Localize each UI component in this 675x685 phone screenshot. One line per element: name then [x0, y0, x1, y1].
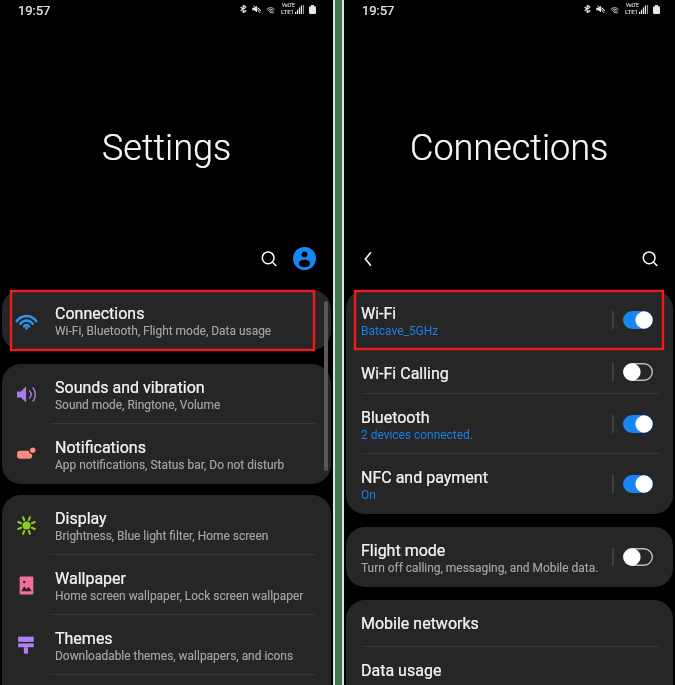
- staticText: Wallpaper: [55, 569, 126, 588]
- staticText: VoLTE: [282, 3, 295, 8]
- button[interactable]: Flight mode: [346, 527, 673, 587]
- staticText: Downloadable themes, wallpapers, and ico…: [55, 649, 294, 663]
- button[interactable]: Display: [2, 495, 331, 555]
- staticText: Wi-Fi Calling: [361, 364, 449, 383]
- staticText: LTE1: [625, 8, 639, 15]
- staticText: App notifications, Status bar, Do not di…: [55, 458, 285, 472]
- staticText: Sounds and vibration: [55, 378, 205, 397]
- staticText: Connections: [55, 304, 145, 323]
- button[interactable]: Wi-Fi on: [623, 311, 653, 329]
- staticText: LTE1: [281, 8, 295, 15]
- staticText: Data usage: [361, 661, 442, 680]
- button[interactable]: Search: [632, 241, 668, 277]
- button[interactable]: Mobile networks: [346, 600, 673, 647]
- button[interactable]: Wi-Fi Calling off: [623, 363, 653, 381]
- staticText: 2 devices connected.: [361, 428, 473, 442]
- button[interactable]: Themes: [2, 615, 331, 675]
- staticText: Bluetooth: [361, 408, 430, 427]
- button[interactable]: Data usage: [346, 647, 673, 685]
- button[interactable]: Wallpaper: [2, 555, 331, 615]
- button[interactable]: Notifications: [2, 424, 331, 484]
- button[interactable]: Wi-Fi Calling: [346, 350, 673, 394]
- staticText: NFC and payment: [361, 468, 488, 487]
- staticText: Brightness, Blue light filter, Home scre…: [55, 529, 269, 543]
- button[interactable]: NFC and payment on: [623, 475, 653, 493]
- button[interactable]: Wi-Fi: [346, 290, 673, 350]
- button[interactable]: Bluetooth: [346, 394, 673, 454]
- staticText: Wi-Fi, Bluetooth, Flight mode, Data usag…: [55, 324, 272, 338]
- staticText: Flight mode: [361, 541, 446, 560]
- staticText: Wi-Fi: [361, 304, 397, 323]
- button[interactable]: NFC and payment: [346, 454, 673, 514]
- button[interactable]: Sounds and vibration: [2, 364, 331, 424]
- staticText: Sound mode, Ringtone, Volume: [55, 398, 221, 412]
- staticText: Turn off calling, messaging, and Mobile …: [361, 561, 599, 575]
- button[interactable]: Search: [251, 241, 287, 277]
- staticText: Batcave_5GHz: [361, 324, 439, 338]
- staticText: 19:57: [18, 3, 51, 18]
- button[interactable]: Account: [286, 240, 322, 276]
- button[interactable]: Bluetooth on: [623, 415, 653, 433]
- staticText: On: [361, 488, 376, 502]
- button[interactable]: Flight mode off: [623, 548, 653, 566]
- staticText: Themes: [55, 629, 113, 648]
- staticText: Home screen wallpaper, Lock screen wallp…: [55, 589, 304, 603]
- button[interactable]: Connections: [2, 290, 331, 350]
- staticText: Settings: [102, 127, 232, 169]
- staticText: VoLTE: [626, 3, 639, 8]
- staticText: 19:57: [362, 3, 395, 18]
- button[interactable]: Back: [350, 241, 386, 277]
- staticText: Mobile networks: [361, 614, 479, 633]
- staticText: Display: [55, 509, 107, 528]
- staticText: Connections: [410, 127, 609, 169]
- staticText: Notifications: [55, 438, 146, 457]
